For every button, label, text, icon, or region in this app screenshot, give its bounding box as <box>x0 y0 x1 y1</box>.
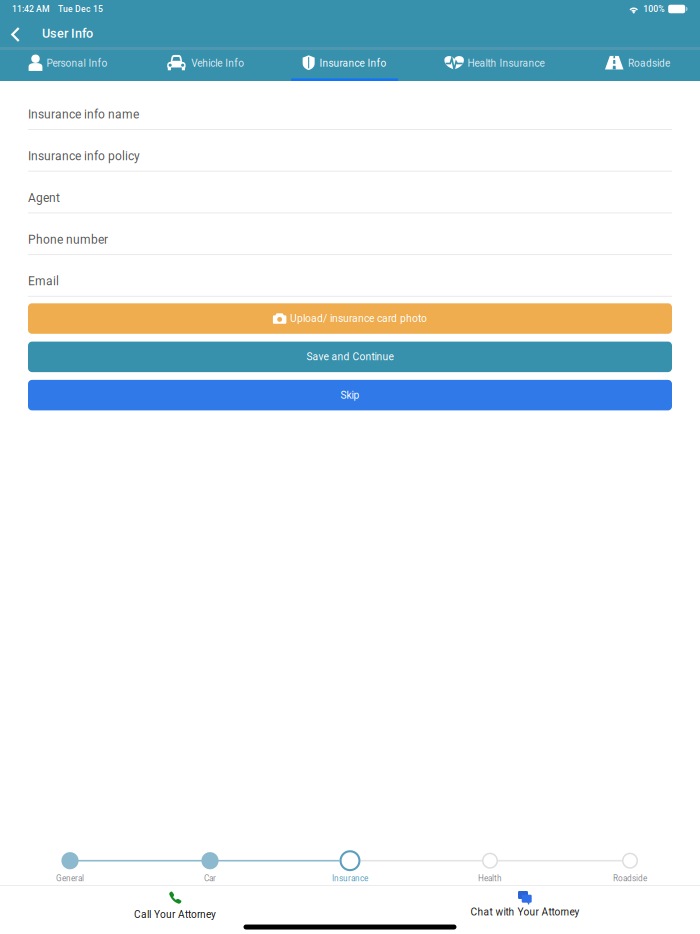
button[interactable]: Roadside <box>575 47 700 81</box>
staticText: Email <box>28 274 59 288</box>
button[interactable]: Back <box>5 20 26 45</box>
staticText: Roadside <box>613 874 647 883</box>
staticText: Insurance Info <box>320 57 387 69</box>
staticText: Save and Continue <box>306 351 393 363</box>
button[interactable]: Upload/ insurance card photo <box>28 303 672 334</box>
staticText: Vehicle Info <box>191 57 244 69</box>
staticText: 11:42 AM <box>12 4 50 14</box>
staticText: Personal Info <box>46 57 107 69</box>
button[interactable]: Chat with Your Attorney <box>350 886 700 920</box>
staticText: Health <box>478 874 502 883</box>
button[interactable]: Health Insurance <box>414 47 575 81</box>
staticText: Skip <box>340 389 359 401</box>
staticText: General <box>56 874 84 883</box>
staticText: Roadside <box>628 57 670 69</box>
staticText: Upload/ insurance card photo <box>290 312 427 324</box>
staticText: Insurance <box>332 874 368 883</box>
button[interactable]: Personal Info <box>0 47 135 81</box>
staticText: Agent <box>28 191 60 205</box>
staticText: Call Your Attorney <box>134 909 216 921</box>
staticText: Chat with Your Attorney <box>470 906 579 918</box>
staticText: Health Insurance <box>467 57 544 69</box>
staticText: Phone number <box>28 232 108 247</box>
button[interactable]: Insurance Info <box>275 47 414 81</box>
staticText: 100% <box>643 4 664 14</box>
staticText: User Info <box>42 26 93 41</box>
staticText: Car <box>204 874 216 883</box>
staticText: Insurance info name <box>28 107 139 121</box>
button[interactable]: Save and Continue <box>28 342 672 372</box>
staticText: Tue Dec 15 <box>58 4 103 14</box>
button[interactable]: Vehicle Info <box>135 47 275 81</box>
staticText: Insurance info policy <box>28 149 140 163</box>
button[interactable]: Call Your Attorney <box>0 886 350 920</box>
button[interactable]: Skip <box>28 380 672 410</box>
